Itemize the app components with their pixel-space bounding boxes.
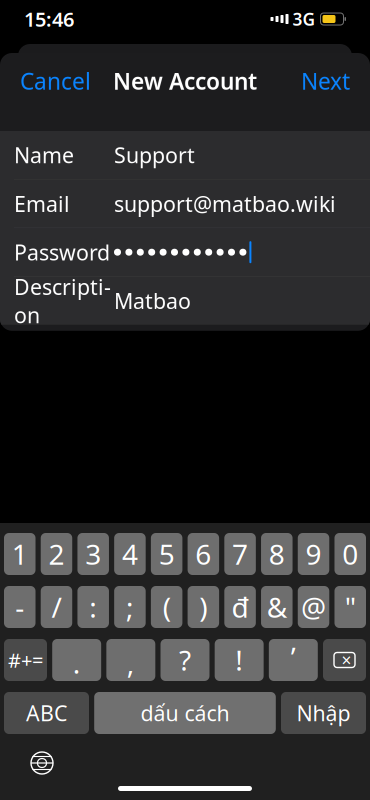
button[interactable]: 1 [4, 533, 35, 575]
button[interactable]: ? [160, 639, 209, 681]
button[interactable]: 2 [41, 533, 72, 575]
button[interactable]: Nhập [281, 692, 366, 734]
staticText: ABC [26, 699, 67, 727]
button[interactable]: ; [114, 586, 146, 628]
staticText: " [345, 588, 356, 626]
staticText: support@matbao.wiki [114, 189, 336, 218]
staticText: - [15, 588, 24, 626]
staticText: 4 [122, 535, 138, 573]
button[interactable]: Password [0, 228, 370, 276]
button[interactable]: Delete [323, 639, 366, 681]
staticText: , [127, 644, 135, 682]
button[interactable]: 9 [298, 533, 329, 575]
staticText: Next [301, 66, 350, 96]
staticText: 8 [269, 535, 285, 573]
button[interactable]: ) [188, 586, 219, 628]
staticText: . [73, 644, 81, 682]
button[interactable]: . [52, 639, 101, 681]
staticText: Matbao [114, 287, 191, 315]
staticText: ! [235, 641, 243, 679]
button[interactable]: " [334, 586, 366, 628]
button[interactable]: 7 [224, 533, 256, 575]
staticText: 0 [342, 535, 358, 573]
button[interactable]: Next keyboard [22, 745, 62, 781]
button[interactable]: Email [0, 180, 370, 228]
staticText: Cancel [20, 66, 91, 96]
button[interactable]: & [261, 586, 292, 628]
button[interactable]: dấu cách [94, 692, 276, 734]
staticText: 3G [292, 7, 315, 30]
button[interactable]: @ [298, 586, 329, 628]
button[interactable]: 3 [77, 533, 109, 575]
staticText: #+= [8, 647, 43, 673]
button[interactable]: , [106, 639, 155, 681]
staticText: ? [179, 641, 191, 679]
button[interactable]: 8 [261, 533, 292, 575]
button[interactable]: - [4, 586, 35, 628]
staticText: & [267, 588, 287, 626]
button[interactable]: Cancel [6, 56, 105, 106]
staticText: ( [163, 588, 171, 626]
button[interactable]: : [77, 586, 109, 628]
staticText: 5 [159, 535, 175, 573]
button[interactable]: / [41, 586, 72, 628]
staticText: Support [114, 141, 195, 169]
staticText: : [89, 588, 97, 626]
button[interactable]: Description [0, 277, 370, 325]
staticText: Email [14, 189, 70, 218]
staticText: 15:46 [24, 6, 74, 32]
staticText: New Account [113, 66, 257, 96]
staticText: / [51, 588, 61, 626]
staticText: 7 [232, 535, 248, 573]
button[interactable]: 6 [188, 533, 219, 575]
button[interactable]: #+= [4, 639, 47, 681]
staticText: 9 [305, 535, 321, 573]
staticText: ) [199, 588, 207, 626]
staticText: 1 [12, 535, 28, 573]
button[interactable]: ! [215, 639, 264, 681]
button[interactable]: đ [224, 586, 256, 628]
staticText: 6 [195, 535, 211, 573]
button[interactable]: 5 [151, 533, 182, 575]
button[interactable]: ’ [269, 639, 318, 681]
staticText: 2 [48, 535, 64, 573]
button[interactable]: ABC [4, 692, 89, 734]
staticText: Description [14, 272, 111, 329]
button[interactable]: 0 [334, 533, 366, 575]
staticText: @ [301, 588, 326, 626]
staticText: 3 [85, 535, 101, 573]
staticText: ’ [291, 638, 296, 676]
staticText: Nhập [296, 699, 350, 727]
staticText: Password [14, 238, 110, 266]
button[interactable]: ( [151, 586, 182, 628]
staticText: × [341, 648, 351, 671]
button[interactable]: Name [0, 131, 370, 179]
staticText: ; [126, 588, 134, 626]
button[interactable]: Next [287, 56, 364, 106]
button[interactable]: 4 [114, 533, 146, 575]
staticText: Name [14, 141, 74, 169]
staticText: đ [232, 588, 249, 626]
staticText: dấu cách [140, 699, 229, 727]
